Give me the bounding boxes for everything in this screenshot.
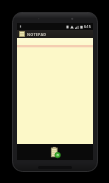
button[interactable]: NOTEPAD xyxy=(17,30,93,38)
staticText: NOTEPAD xyxy=(27,32,47,37)
staticText: 6:15 xyxy=(84,24,91,29)
button[interactable] xyxy=(17,38,93,144)
button[interactable]: Restore note xyxy=(49,146,61,159)
